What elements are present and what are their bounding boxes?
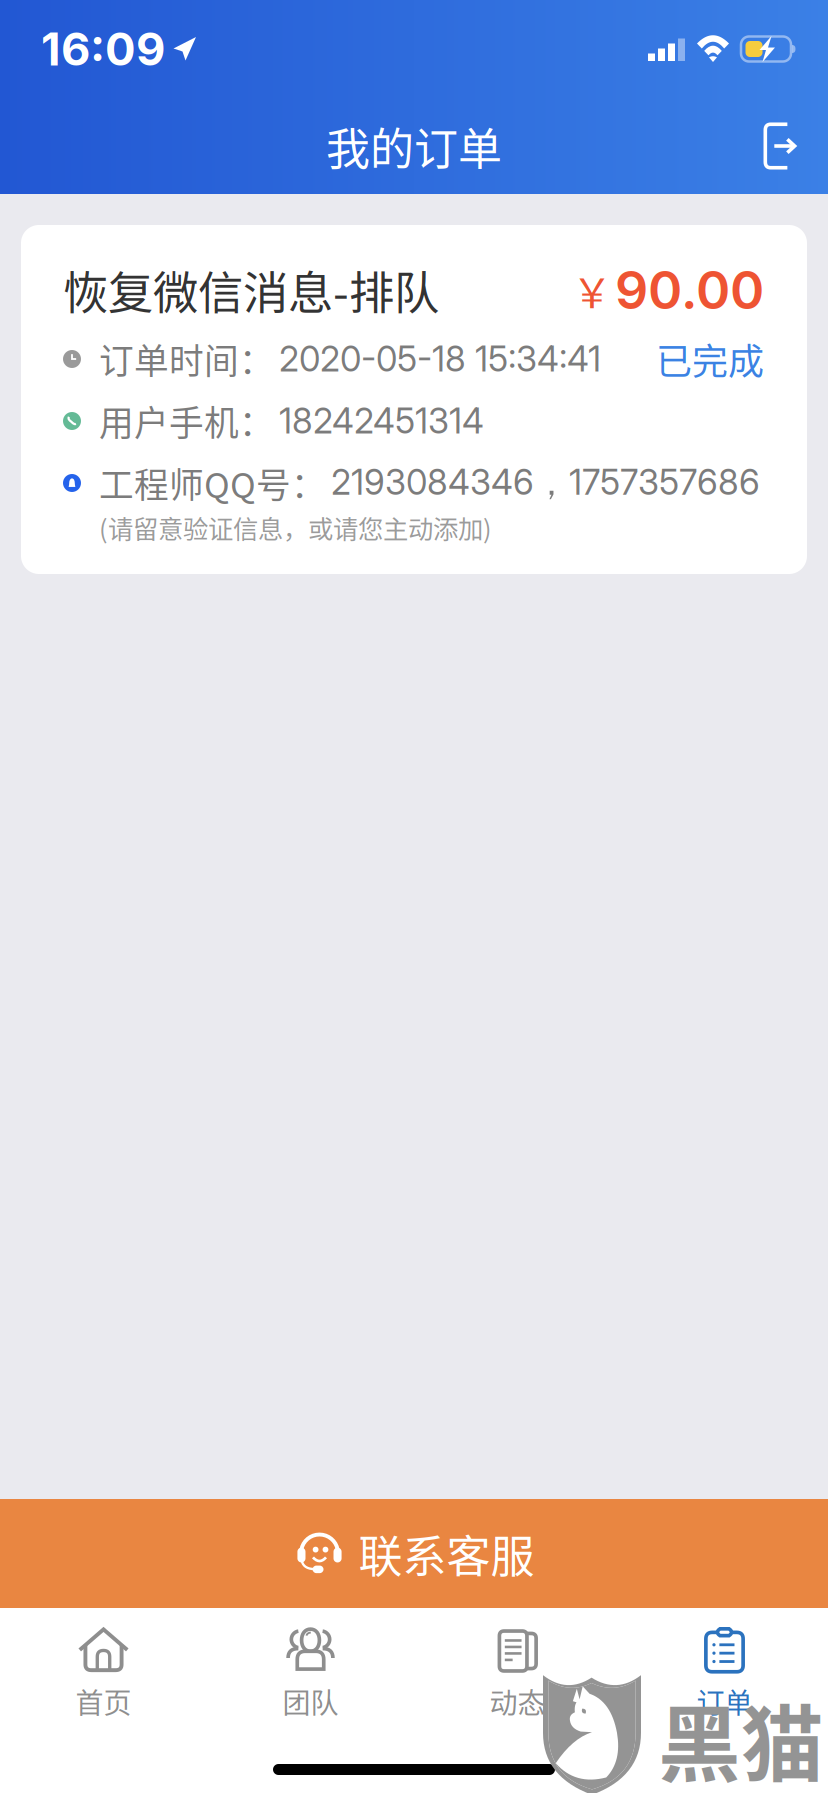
staticText: 2193084346，1757357686 xyxy=(331,461,760,505)
staticText: 18242451314 xyxy=(279,400,484,442)
staticText: (请留意验证信息，或请您主动添加) xyxy=(99,509,492,546)
staticText: 已完成 xyxy=(656,333,764,385)
staticText: ￥ xyxy=(572,261,612,319)
button[interactable]: 订单 xyxy=(621,1608,828,1729)
staticText: 首页 xyxy=(75,1681,131,1721)
button[interactable]: 联系客服 xyxy=(0,1499,828,1608)
staticText: 2020-05-18 15:34:41 xyxy=(279,338,601,380)
staticText: 联系客服 xyxy=(358,1522,534,1585)
staticText: 恢复微信消息-排队 xyxy=(63,257,439,323)
button[interactable]: 恢复微信消息-排队 xyxy=(21,225,807,574)
staticText: 动态 xyxy=(489,1681,545,1721)
staticText: 工程师QQ号： xyxy=(99,458,326,508)
staticText: 用户手机： xyxy=(99,396,274,446)
staticText: 订单时间： xyxy=(99,334,274,384)
staticText: 团队 xyxy=(282,1681,338,1721)
button[interactable]: 首页 xyxy=(0,1608,207,1729)
staticText: 我的订单 xyxy=(326,114,502,178)
button[interactable]: 动态 xyxy=(414,1608,621,1729)
staticText: 16:09 xyxy=(41,22,165,76)
button[interactable]: Sign out xyxy=(738,101,828,191)
staticText: 90.00 xyxy=(615,258,764,321)
staticText: 黑猫 xyxy=(658,1679,824,1793)
button[interactable]: 团队 xyxy=(207,1608,414,1729)
staticText: 订单 xyxy=(696,1681,752,1721)
